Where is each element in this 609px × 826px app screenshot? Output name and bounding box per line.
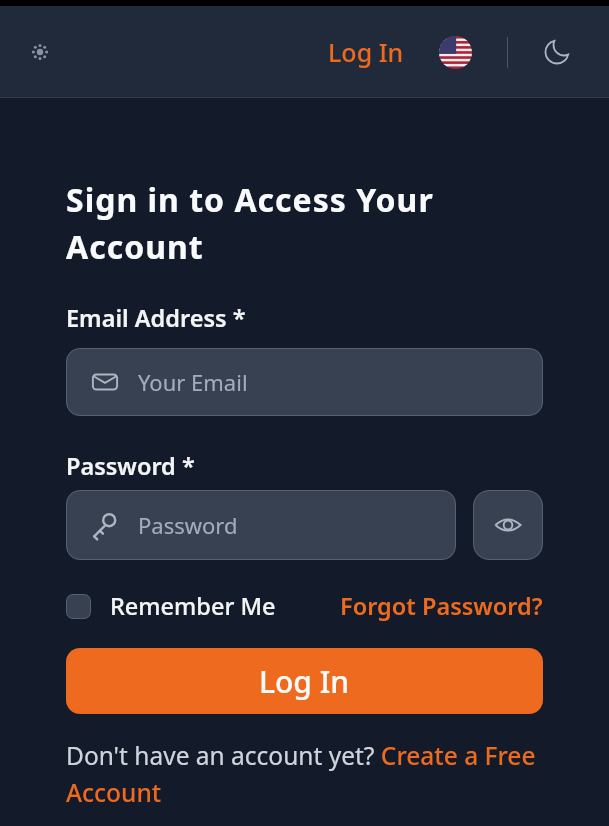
staticText: Your Email [138, 367, 248, 397]
staticText: Email Address * [66, 302, 246, 334]
staticText: Password * [66, 450, 195, 482]
button[interactable] [30, 42, 50, 62]
button[interactable]: Password [66, 490, 456, 560]
button[interactable] [473, 490, 543, 560]
button[interactable]: Don't have an account yet? Create a Free… [66, 739, 536, 809]
button[interactable]: Forgot Password? [340, 590, 543, 622]
staticText: Remember Me [110, 590, 276, 622]
staticText: Log In [259, 661, 350, 702]
staticText: Don't have an account yet? Create a Free… [66, 739, 536, 809]
staticText: Forgot Password? [340, 590, 543, 622]
button[interactable]: Log In [328, 35, 404, 69]
button[interactable]: Your Email [66, 348, 543, 416]
staticText: Log In [328, 35, 404, 69]
staticText: Sign in to Access Your Account [66, 178, 434, 269]
button[interactable] [439, 36, 472, 69]
button[interactable] [543, 38, 571, 66]
button[interactable]: Remember Me [66, 590, 276, 622]
button[interactable]: Log In [66, 648, 543, 714]
staticText: Password [138, 510, 238, 540]
